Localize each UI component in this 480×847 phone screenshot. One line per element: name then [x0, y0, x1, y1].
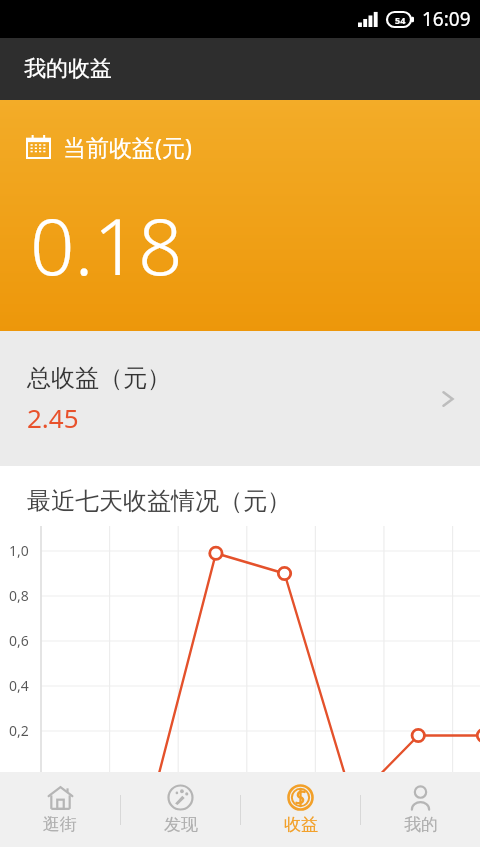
staticText: 2.45	[27, 400, 79, 435]
staticText: 我的	[404, 814, 438, 835]
button[interactable]: 发现	[121, 772, 240, 847]
staticText: 1,0	[9, 541, 29, 560]
staticText: 最近七天收益情况（元）	[27, 486, 291, 516]
staticText: 逛街	[43, 814, 77, 835]
staticText: 总收益（元）	[27, 363, 171, 393]
staticText: 0,8	[9, 586, 29, 605]
staticText: 我的收益	[24, 55, 112, 83]
staticText: 54	[395, 14, 406, 26]
staticText: 收益	[284, 814, 318, 835]
button[interactable]: 我的	[361, 772, 480, 847]
button[interactable]: 收益	[241, 772, 360, 847]
button[interactable]: 逛街	[0, 772, 120, 847]
staticText: 16:09	[422, 6, 471, 32]
staticText: 0,2	[9, 721, 29, 740]
staticText: 0,6	[9, 631, 29, 650]
staticText: 0.18	[30, 192, 183, 298]
staticText: 当前收益(元)	[63, 131, 192, 162]
button[interactable]: 总收益（元）	[0, 331, 480, 466]
staticText: 0,4	[9, 676, 29, 695]
staticText: 发现	[164, 814, 198, 835]
